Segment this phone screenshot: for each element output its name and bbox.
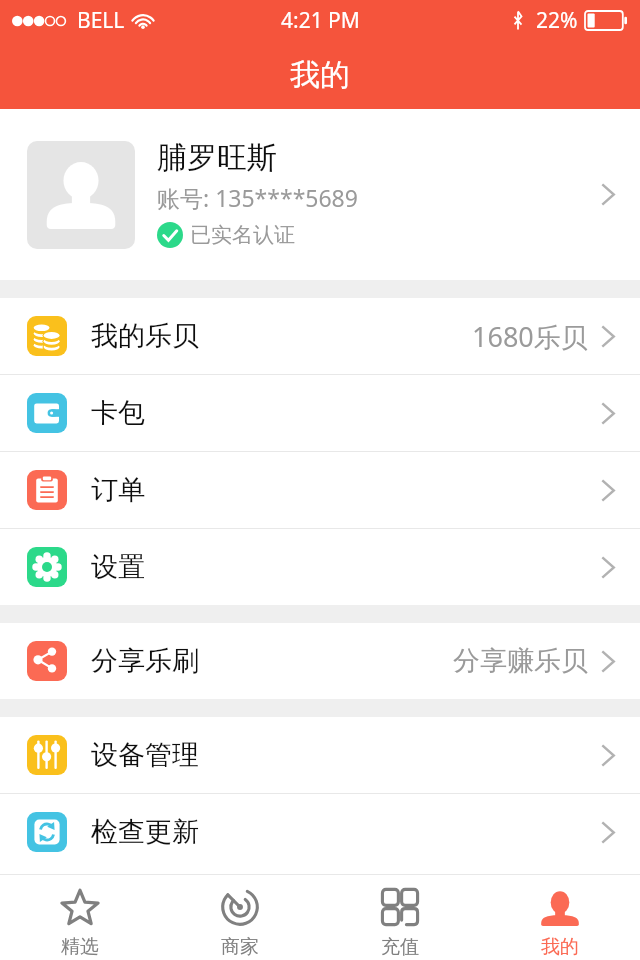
- button[interactable]: 我的: [480, 875, 640, 960]
- staticText: 设备管理: [91, 738, 199, 772]
- button[interactable]: 检查更新: [0, 794, 640, 870]
- staticText: 我的乐贝: [91, 319, 199, 353]
- button[interactable]: 我的乐贝: [0, 298, 640, 374]
- staticText: 精选: [61, 935, 99, 959]
- button[interactable]: 设置: [0, 529, 640, 605]
- staticText: 账号: 135****5689: [157, 182, 358, 213]
- staticText: 已实名认证: [190, 222, 295, 248]
- staticText: 4:21 PM: [281, 6, 360, 35]
- staticText: 1680乐贝: [472, 318, 588, 355]
- button[interactable]: 脯罗旺斯: [0, 109, 640, 280]
- button[interactable]: 分享乐刷: [0, 623, 640, 699]
- button[interactable]: 充值: [320, 875, 480, 960]
- staticText: 我的: [290, 56, 350, 94]
- staticText: 分享乐刷: [91, 644, 199, 678]
- staticText: 商家: [221, 935, 259, 959]
- button[interactable]: 设备管理: [0, 717, 640, 793]
- button[interactable]: 订单: [0, 452, 640, 528]
- staticText: 我的: [541, 935, 579, 959]
- button[interactable]: 商家: [160, 875, 320, 960]
- staticText: 检查更新: [91, 815, 199, 849]
- button[interactable]: 精选: [0, 875, 160, 960]
- staticText: 分享赚乐贝: [453, 644, 588, 678]
- staticText: BELL: [77, 6, 125, 35]
- staticText: 充值: [381, 935, 419, 959]
- button[interactable]: 卡包: [0, 375, 640, 451]
- staticText: 脯罗旺斯: [157, 139, 277, 177]
- staticText: 卡包: [91, 396, 145, 430]
- staticText: 设置: [91, 550, 145, 584]
- staticText: 订单: [91, 473, 145, 507]
- staticText: 22%: [536, 6, 578, 35]
